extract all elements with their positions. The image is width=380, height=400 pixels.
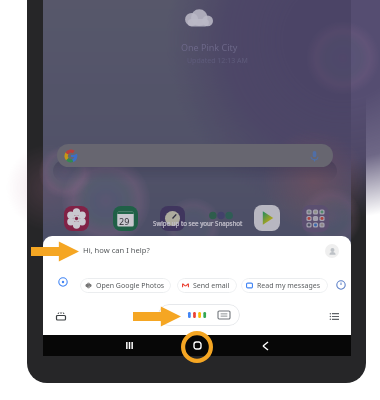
staticText: Send email — [193, 281, 230, 291]
button[interactable]: Read my messages — [241, 278, 328, 293]
button[interactable]: Open Google Photos — [80, 278, 171, 293]
button[interactable]: Recent apps — [109, 335, 149, 356]
button[interactable] — [160, 206, 185, 231]
button[interactable]: Home — [177, 335, 217, 356]
button[interactable] — [57, 144, 333, 167]
button[interactable]: More — [330, 313, 339, 320]
button[interactable]: 29 — [113, 206, 138, 231]
button[interactable]: Lens — [56, 312, 66, 322]
button[interactable]: Account — [325, 244, 339, 258]
button[interactable] — [254, 205, 280, 231]
staticText: Hi, how can I help? — [83, 245, 150, 255]
button[interactable] — [302, 205, 329, 232]
staticText: One Pink City — [181, 41, 238, 53]
button[interactable]: Send email — [177, 278, 237, 293]
button[interactable]: Back — [245, 335, 285, 356]
button[interactable]: Recent — [336, 280, 346, 290]
staticText: Swipe up to see your Snapshot — [153, 219, 243, 227]
button[interactable]: Voice input — [158, 304, 240, 326]
button[interactable] — [64, 206, 89, 231]
staticText: Open Google Photos — [96, 281, 165, 291]
button[interactable]: Explore — [58, 277, 68, 287]
staticText: 29 — [119, 215, 130, 227]
staticText: Read my messages — [257, 281, 321, 291]
staticText: Updated 12:13 AM — [187, 56, 248, 66]
